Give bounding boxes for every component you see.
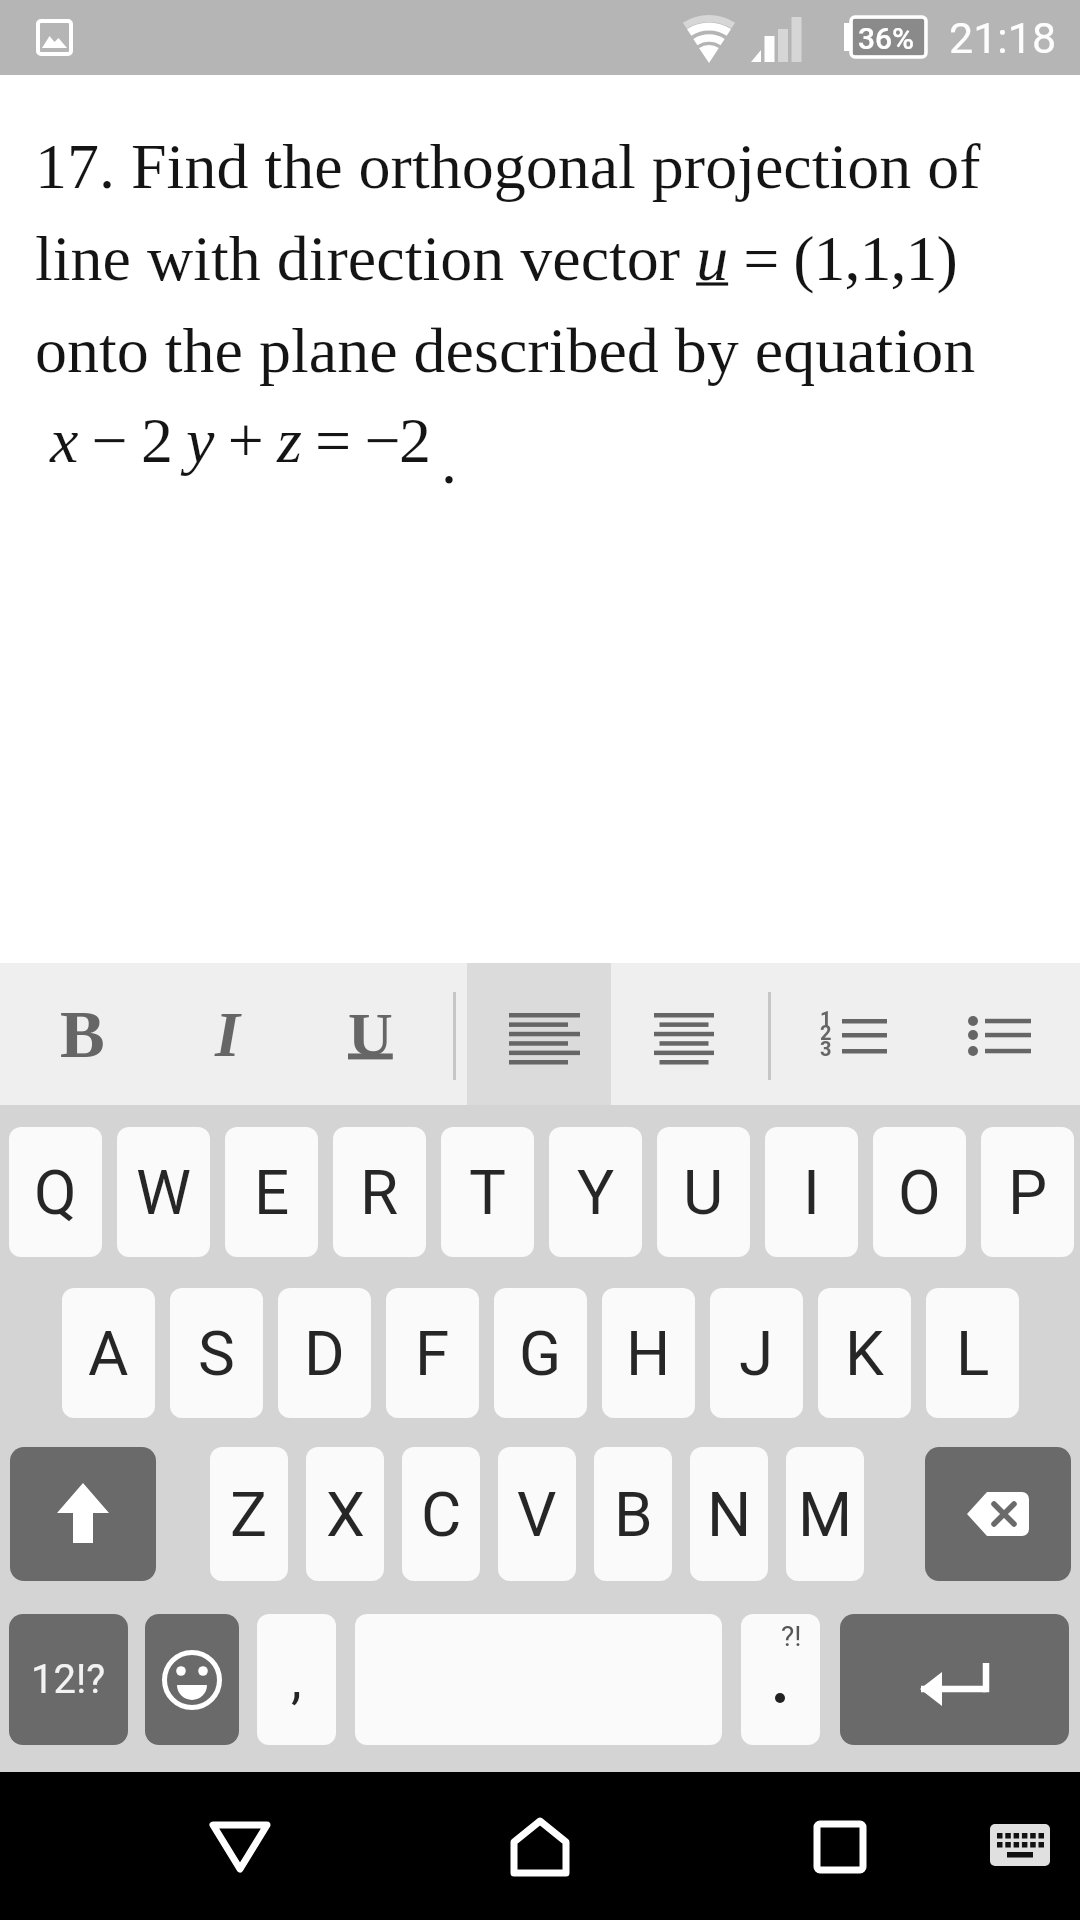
staticText: line with direction vector u = (1,1,1) (35, 223, 957, 294)
staticText: J (739, 1317, 774, 1390)
staticText: E (254, 1156, 290, 1229)
staticText: T (469, 1156, 506, 1229)
button[interactable] (145, 1614, 239, 1745)
button[interactable]: X (306, 1447, 384, 1581)
staticText: Q (34, 1156, 77, 1229)
staticText: 17. Find the orthogonal projection of (35, 131, 981, 202)
staticText: 3 (820, 1037, 832, 1060)
button[interactable] (612, 963, 756, 1105)
staticText: Y (577, 1156, 615, 1229)
staticText: onto the plane described by equation (35, 315, 976, 386)
staticText: . (441, 426, 457, 497)
staticText: W (136, 1156, 192, 1229)
button[interactable]: Y (549, 1127, 642, 1257)
staticText: x − 2 y + z = −2 (50, 405, 430, 476)
button[interactable] (928, 963, 1072, 1105)
staticText: G (519, 1317, 562, 1390)
button[interactable]: 12!? (9, 1614, 128, 1745)
button[interactable]: T (441, 1127, 534, 1257)
staticText: V (517, 1478, 557, 1551)
staticText: N (707, 1478, 752, 1551)
button[interactable]: A (62, 1288, 155, 1418)
staticText: X (326, 1478, 365, 1551)
staticText: 36% (858, 21, 915, 56)
button[interactable]: S (170, 1288, 263, 1418)
button[interactable]: , (257, 1614, 336, 1745)
button[interactable]: B (10, 963, 154, 1105)
staticText: C (421, 1478, 462, 1551)
staticText: O (898, 1156, 941, 1229)
button[interactable]: R (333, 1127, 426, 1257)
button[interactable]: C (402, 1447, 480, 1581)
button[interactable]: D (278, 1288, 371, 1418)
button[interactable] (925, 1447, 1071, 1581)
button[interactable] (980, 1817, 1060, 1872)
staticText: ?! (781, 1620, 802, 1653)
button[interactable]: I (155, 963, 299, 1105)
staticText: F (415, 1317, 450, 1390)
staticText: B (60, 997, 105, 1071)
staticText: D (304, 1317, 345, 1390)
button[interactable]: U (657, 1127, 750, 1257)
staticText: R (360, 1156, 399, 1229)
button[interactable]: W (117, 1127, 210, 1257)
button[interactable]: H (602, 1288, 695, 1418)
button[interactable] (10, 1447, 156, 1581)
button[interactable]: U (298, 963, 442, 1105)
staticText: U (348, 1000, 393, 1069)
staticText: 2 (820, 1021, 832, 1044)
staticText: H (626, 1317, 671, 1390)
button[interactable]: Z (210, 1447, 288, 1581)
button[interactable]: V (498, 1447, 576, 1581)
button[interactable] (783, 963, 927, 1105)
button[interactable]: F (386, 1288, 479, 1418)
button[interactable]: M (786, 1447, 864, 1581)
staticText: 12!? (31, 1656, 106, 1703)
button[interactable]: L (926, 1288, 1019, 1418)
staticText: I (803, 1156, 820, 1229)
button[interactable] (490, 1802, 590, 1892)
staticText: , (291, 1648, 302, 1711)
button[interactable]: I (765, 1127, 858, 1257)
staticText: S (198, 1317, 235, 1390)
button[interactable]: E (225, 1127, 318, 1257)
staticText: P (1008, 1156, 1048, 1229)
staticText: 1 (820, 1007, 832, 1030)
button[interactable] (190, 1802, 290, 1892)
staticText: 21:18 (949, 13, 1057, 63)
button[interactable] (467, 963, 611, 1105)
staticText: K (845, 1317, 884, 1390)
button[interactable]: P (981, 1127, 1074, 1257)
button[interactable] (840, 1614, 1069, 1745)
button[interactable]: B (594, 1447, 672, 1581)
staticText: I (215, 999, 240, 1070)
button[interactable]: J (710, 1288, 803, 1418)
staticText: U (683, 1156, 724, 1229)
staticText: Z (230, 1478, 268, 1551)
staticText: L (956, 1317, 990, 1390)
staticText: A (88, 1317, 129, 1390)
button[interactable]: ?! (741, 1614, 820, 1745)
staticText: B (614, 1478, 653, 1551)
button[interactable] (790, 1802, 890, 1892)
staticText: M (798, 1478, 853, 1551)
button[interactable]: Q (9, 1127, 102, 1257)
button[interactable]: G (494, 1288, 587, 1418)
button[interactable]: O (873, 1127, 966, 1257)
button[interactable]: K (818, 1288, 911, 1418)
button[interactable]: N (690, 1447, 768, 1581)
